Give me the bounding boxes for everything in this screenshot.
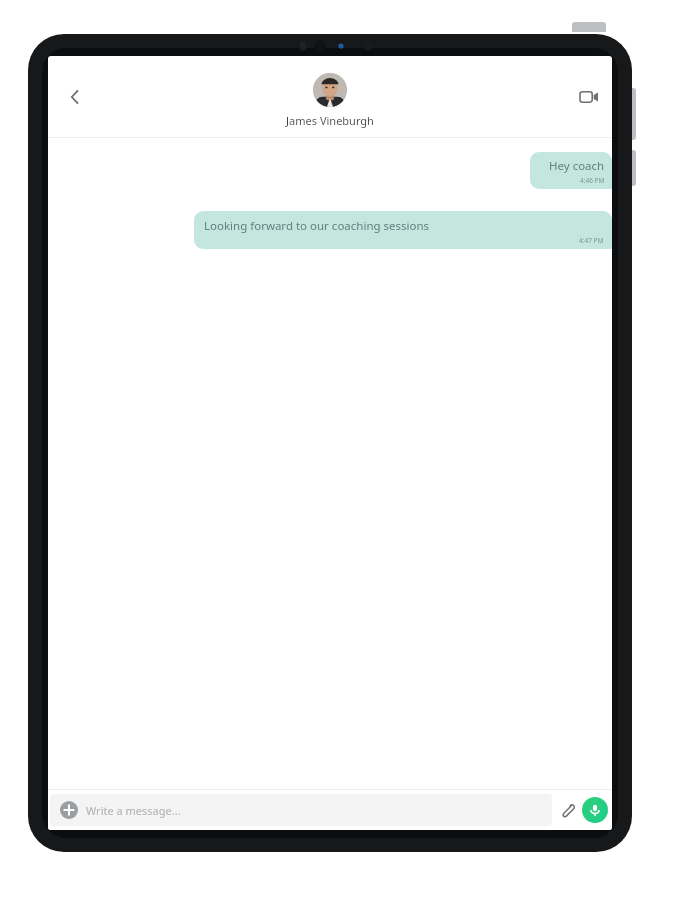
button[interactable]: Record voice message — [582, 797, 608, 823]
button[interactable]: Add attachment — [50, 794, 552, 826]
staticText: 4:46 PM — [580, 176, 605, 185]
button[interactable]: James Vineburgh — [286, 73, 374, 128]
button[interactable]: Back — [58, 80, 92, 114]
staticText: 4:47 PM — [579, 236, 604, 245]
button[interactable]: Add attachment — [60, 801, 78, 819]
staticText: Looking forward to our coaching sessions — [204, 218, 430, 234]
button[interactable]: Looking forward to our coaching sessions — [194, 211, 612, 249]
staticText: James Vineburgh — [286, 113, 374, 128]
staticText: Hey coach — [549, 158, 605, 174]
staticText: Write a message... — [86, 803, 181, 818]
button[interactable]: Video call — [572, 80, 606, 114]
button[interactable]: Attach file — [552, 795, 582, 825]
button[interactable]: Hey coach — [530, 152, 612, 189]
